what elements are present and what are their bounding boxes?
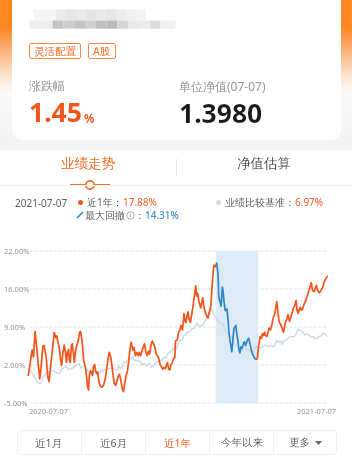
- staticText: 2021-07-07: [297, 406, 337, 416]
- button[interactable]: 更多: [274, 430, 337, 455]
- button[interactable]: 灵活配置: [29, 43, 81, 59]
- staticText: 14.31%: [145, 208, 179, 222]
- staticText: 今年以来: [221, 436, 263, 449]
- button[interactable]: 今年以来: [210, 430, 273, 455]
- staticText: 业绩比较基准：: [225, 196, 295, 209]
- staticText: %: [84, 111, 95, 127]
- staticText: 近1月: [35, 436, 63, 450]
- staticText: 2020-07-07: [29, 406, 69, 416]
- button[interactable]: 业绩走势: [0, 150, 176, 185]
- staticText: 近1年：: [87, 195, 123, 209]
- staticText: 涨跌幅: [29, 78, 65, 93]
- staticText: 业绩走势: [61, 155, 115, 172]
- staticText: 近6月: [100, 436, 128, 450]
- staticText: 17.88%: [123, 195, 157, 209]
- staticText: 2.00%: [4, 360, 26, 370]
- staticText: 近1年: [164, 436, 192, 450]
- button[interactable]: 近6月: [82, 430, 145, 455]
- staticText: 更多: [289, 436, 310, 449]
- button[interactable]: 近1月: [17, 430, 81, 455]
- staticText: 9.00%: [4, 322, 26, 332]
- staticText: -5.00%: [4, 398, 28, 408]
- staticText: 16.00%: [4, 284, 30, 294]
- button[interactable]: 净值估算: [176, 150, 352, 185]
- button[interactable]: 最大回撤说明: [126, 211, 135, 220]
- staticText: 6.97%: [295, 195, 324, 209]
- staticText: ：: [135, 209, 145, 222]
- staticText: 净值估算: [237, 155, 291, 172]
- staticText: 1.45: [29, 94, 82, 130]
- staticText: 22.00%: [4, 246, 30, 256]
- staticText: 1.3980: [179, 95, 263, 131]
- button[interactable]: 近1年: [146, 430, 209, 455]
- staticText: A股: [93, 44, 111, 58]
- staticText: 2021-07-07: [15, 196, 68, 210]
- staticText: 灵活配置: [34, 45, 76, 58]
- button[interactable]: A股: [88, 43, 116, 59]
- staticText: 最大回撤: [85, 209, 125, 222]
- staticText: 单位净值(07-07): [179, 78, 266, 94]
